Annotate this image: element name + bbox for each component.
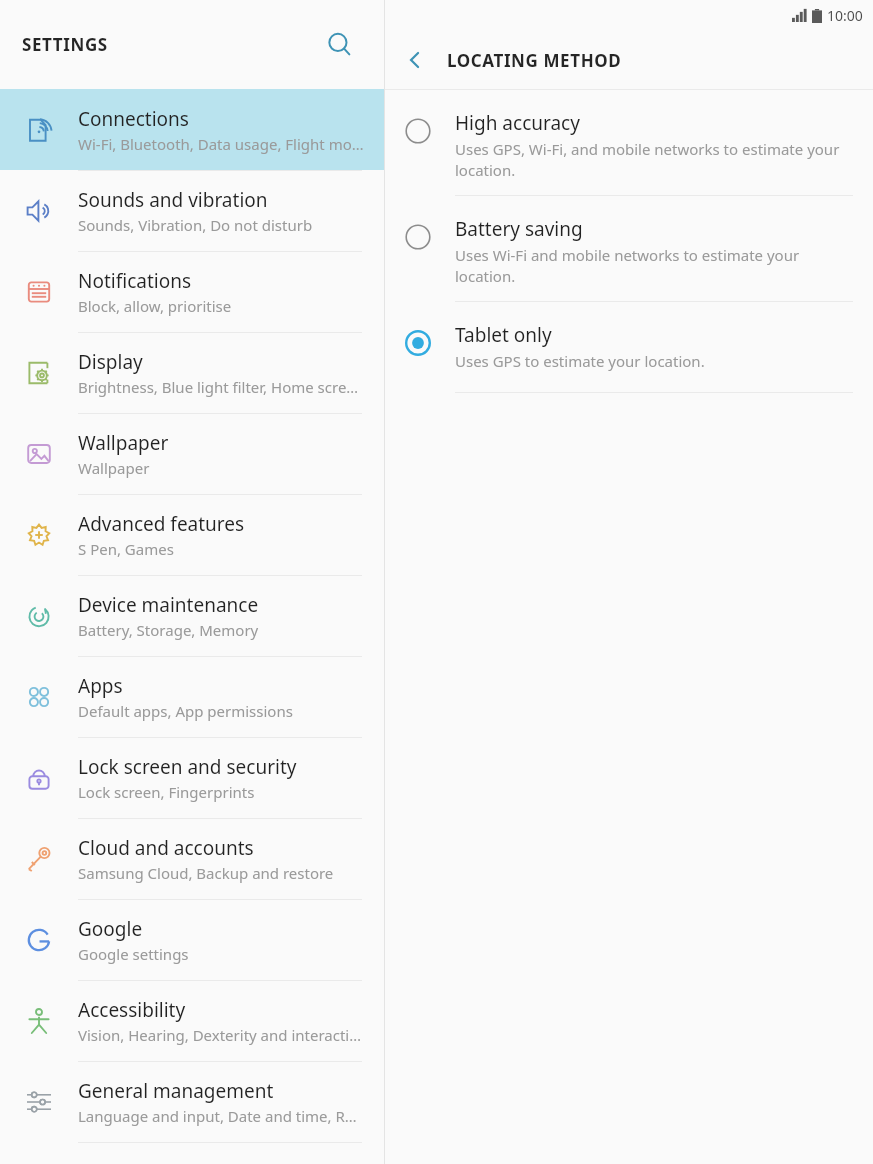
staticText: Sounds and vibration — [78, 187, 268, 213]
button[interactable]: Cloud and accounts — [0, 818, 384, 899]
staticText: General management — [78, 1078, 274, 1104]
button[interactable]: Advanced features — [0, 494, 384, 575]
staticText: Language and input, Date and time, Res… — [78, 1106, 364, 1126]
staticText: Google settings — [78, 944, 189, 964]
staticText: Default apps, App permissions — [78, 701, 293, 721]
staticText: Tablet only — [455, 322, 552, 348]
button[interactable]: Battery saving — [385, 196, 873, 301]
staticText: 10:00 — [827, 6, 863, 25]
button[interactable]: Search — [316, 21, 364, 69]
button[interactable]: Connections — [0, 89, 384, 170]
staticText: Apps — [78, 673, 123, 699]
staticText: High accuracy — [455, 110, 580, 136]
staticText: Cloud and accounts — [78, 835, 254, 861]
staticText: Connections — [78, 106, 189, 132]
staticText: Battery saving — [455, 216, 583, 242]
staticText: LOCATING METHOD — [447, 49, 622, 72]
staticText: Vision, Hearing, Dexterity and interacti… — [78, 1025, 364, 1045]
staticText: Uses Wi-Fi and mobile networks to estima… — [455, 245, 853, 287]
staticText: Wallpaper — [78, 458, 150, 478]
staticText: SETTINGS — [22, 33, 108, 56]
staticText: Brightness, Blue light filter, Home scre… — [78, 377, 364, 397]
staticText: Wi-Fi, Bluetooth, Data usage, Flight mod… — [78, 134, 364, 154]
staticText: Samsung Cloud, Backup and restore — [78, 863, 334, 883]
staticText: Accessibility — [78, 997, 186, 1023]
button[interactable]: General management — [0, 1061, 384, 1142]
staticText: Battery, Storage, Memory — [78, 620, 259, 640]
button[interactable]: Apps — [0, 656, 384, 737]
button[interactable]: Google — [0, 899, 384, 980]
button[interactable]: Accessibility — [0, 980, 384, 1061]
button[interactable]: Display — [0, 332, 384, 413]
staticText: Display — [78, 349, 143, 375]
button[interactable]: Back — [391, 36, 439, 84]
staticText: Uses GPS, Wi-Fi, and mobile networks to … — [455, 139, 840, 181]
button[interactable]: Device maintenance — [0, 575, 384, 656]
staticText: Block, allow, prioritise — [78, 296, 232, 316]
button[interactable]: High accuracy — [385, 90, 873, 195]
button[interactable]: Lock screen and security — [0, 737, 384, 818]
staticText: Lock screen, Fingerprints — [78, 782, 255, 802]
staticText: Uses GPS to estimate your location. — [455, 351, 705, 371]
staticText: S Pen, Games — [78, 539, 174, 559]
staticText: Device maintenance — [78, 592, 259, 618]
button[interactable]: Tablet only — [385, 302, 873, 392]
button[interactable]: Wallpaper — [0, 413, 384, 494]
staticText: Google — [78, 916, 143, 942]
staticText: Sounds, Vibration, Do not disturb — [78, 215, 313, 235]
button[interactable]: Sounds and vibration — [0, 170, 384, 251]
staticText: Advanced features — [78, 511, 245, 537]
staticText: Wallpaper — [78, 430, 169, 456]
button[interactable]: Notifications — [0, 251, 384, 332]
staticText: Lock screen and security — [78, 754, 297, 780]
staticText: Notifications — [78, 268, 192, 294]
